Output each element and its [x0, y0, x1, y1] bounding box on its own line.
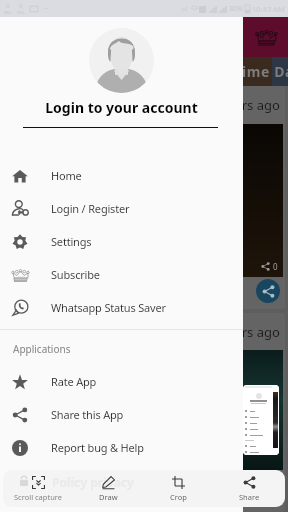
- staticText: Applications: [13, 342, 71, 356]
- button[interactable]: Home: [0, 159, 243, 192]
- staticText: 0: [6, 2, 10, 10]
- button[interactable]: Rate App: [0, 365, 243, 398]
- staticText: Share: [239, 492, 260, 502]
- staticText: Rate App: [51, 374, 97, 389]
- staticText: 0: [19, 2, 23, 10]
- staticText: KB/s: [4, 10, 12, 15]
- staticText: Crop: [170, 492, 187, 502]
- button[interactable]: Report bug & Help: [0, 431, 243, 464]
- button[interactable]: Subscribe: [0, 258, 243, 291]
- staticText: Whatsapp Status Saver: [51, 300, 166, 315]
- staticText: Share this App: [51, 407, 124, 422]
- staticText: 10:43 AM: [252, 4, 285, 14]
- button[interactable]: Crop: [143, 470, 214, 507]
- button[interactable]: Share: [256, 279, 280, 303]
- button[interactable]: Share: [214, 470, 285, 507]
- staticText: KB/s: [17, 10, 25, 15]
- staticText: 30%: [229, 4, 243, 14]
- button[interactable]: Scroll capture: [3, 470, 73, 507]
- button[interactable]: Settings: [0, 225, 243, 258]
- staticText: 0: [273, 261, 278, 272]
- staticText: 5 hours ago: [207, 96, 280, 114]
- button[interactable]: Share this App: [0, 398, 243, 431]
- staticText: Scroll capture: [14, 492, 62, 502]
- staticText: Anime Darmo Darma: [222, 62, 288, 81]
- staticText: Login to your account: [0, 98, 243, 117]
- button[interactable]: Whatsapp Status Saver: [0, 291, 243, 324]
- staticText: Policy privacy: [52, 474, 134, 490]
- button[interactable]: Login / Register: [0, 192, 243, 225]
- staticText: Login / Register: [51, 201, 130, 216]
- staticText: Settings: [51, 234, 92, 249]
- staticText: Subscribe: [51, 267, 100, 282]
- button[interactable]: Draw: [73, 470, 143, 507]
- staticText: Draw: [99, 492, 118, 502]
- staticText: 5 hours ago: [207, 323, 280, 341]
- staticText: Home: [51, 168, 82, 183]
- staticText: Report bug & Help: [51, 440, 144, 455]
